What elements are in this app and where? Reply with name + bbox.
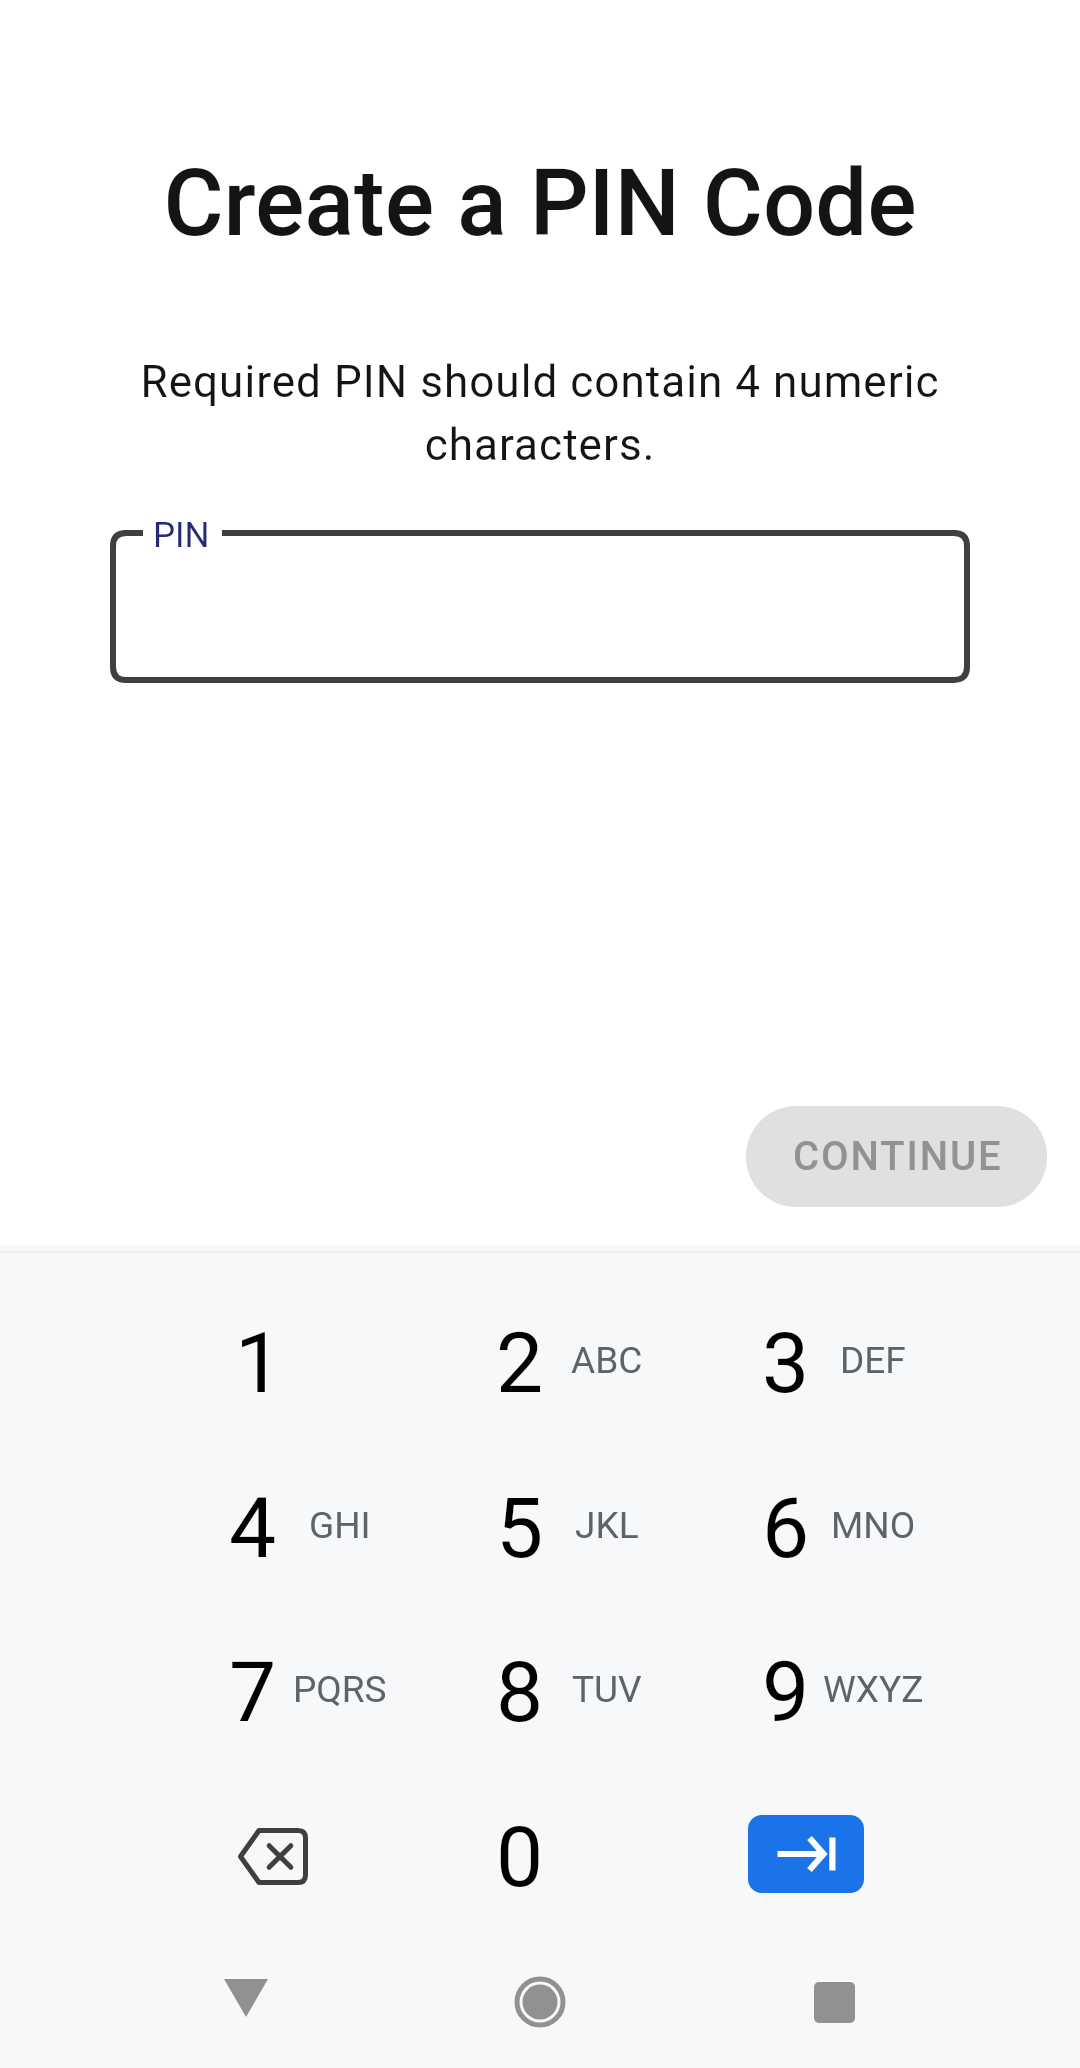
staticText: 5 <box>496 1479 544 1577</box>
button[interactable]: 3 <box>673 1280 940 1445</box>
staticText: 4 <box>229 1479 277 1577</box>
staticText: PIN <box>153 515 210 556</box>
staticText: 0 <box>496 1808 544 1906</box>
button[interactable]: 9 <box>673 1609 940 1774</box>
staticText: 7 <box>229 1643 277 1741</box>
button[interactable]: Enter <box>748 1815 864 1893</box>
staticText: GHI <box>309 1504 371 1547</box>
staticText: 3 <box>762 1314 810 1412</box>
staticText: Required PIN should contain 4 numeric ch… <box>100 356 980 471</box>
staticText: 2 <box>496 1314 544 1412</box>
button[interactable]: Back <box>201 1960 291 2036</box>
button[interactable]: 7 <box>140 1609 407 1774</box>
button[interactable]: 8 <box>407 1609 674 1774</box>
staticText: MNO <box>831 1504 916 1547</box>
button[interactable]: 1 <box>140 1280 407 1445</box>
staticText: 1 <box>235 1314 283 1412</box>
staticText: PQRS <box>293 1668 387 1711</box>
staticText: JKL <box>575 1504 639 1547</box>
staticText: 6 <box>762 1479 810 1577</box>
button[interactable]: 2 <box>407 1280 674 1445</box>
staticText: WXYZ <box>823 1668 924 1711</box>
button[interactable]: 5 <box>407 1445 674 1610</box>
button[interactable]: Home <box>495 1964 585 2040</box>
button[interactable]: 4 <box>140 1445 407 1610</box>
button[interactable]: Recents <box>789 1964 879 2040</box>
button[interactable]: PIN <box>110 530 970 683</box>
staticText: ABC <box>571 1339 643 1382</box>
staticText: DEF <box>840 1339 906 1382</box>
staticText: 9 <box>762 1643 810 1741</box>
button[interactable]: CONTINUE <box>746 1106 1047 1207</box>
button[interactable]: Backspace <box>140 1774 407 1939</box>
staticText: CONTINUE <box>793 1133 1003 1180</box>
staticText: Create a PIN Code <box>0 150 1080 258</box>
staticText: 8 <box>496 1643 544 1741</box>
button[interactable]: 6 <box>673 1445 940 1610</box>
button[interactable]: 0 <box>407 1774 674 1939</box>
staticText: TUV <box>572 1668 642 1711</box>
